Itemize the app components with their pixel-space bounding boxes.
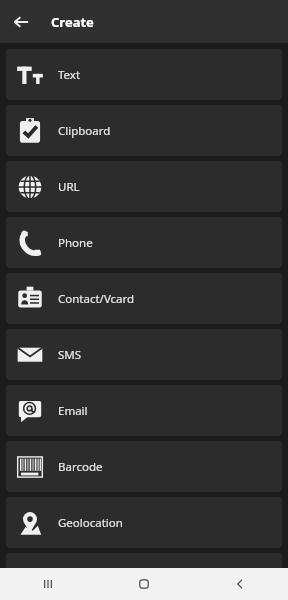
button[interactable]: URL [6, 161, 282, 212]
button[interactable]: Home [96, 568, 192, 600]
staticText: URL [58, 179, 80, 195]
staticText: Barcode [58, 459, 103, 475]
button[interactable]: Recent apps [0, 568, 96, 600]
button[interactable]: Clipboard [6, 105, 282, 156]
staticText: SMS [58, 347, 82, 363]
button[interactable]: Back [6, 7, 36, 37]
button[interactable]: Geolocation [6, 497, 282, 548]
staticText: Create [51, 13, 94, 31]
button[interactable]: SMS [6, 329, 282, 380]
staticText: Email [58, 403, 88, 419]
button[interactable]: Back [192, 568, 288, 600]
button[interactable]: Email [6, 385, 282, 436]
staticText: Text [58, 67, 81, 83]
staticText: Contact/Vcard [58, 291, 135, 307]
staticText: Phone [58, 235, 93, 251]
staticText: Clipboard [58, 123, 111, 139]
button[interactable]: Phone [6, 217, 282, 268]
button[interactable]: Text [6, 49, 282, 100]
staticText: Geolocation [58, 515, 123, 531]
button[interactable]: Barcode [6, 441, 282, 492]
button[interactable]: Contact/Vcard [6, 273, 282, 324]
